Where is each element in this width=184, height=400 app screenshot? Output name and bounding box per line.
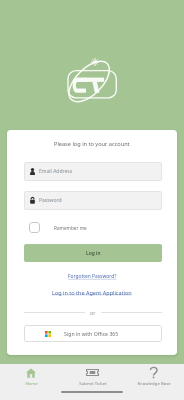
staticText: Please log in to your account: [54, 140, 130, 148]
other: Knowledge Base: [150, 367, 157, 378]
button[interactable]: Password: [30, 191, 162, 210]
button[interactable]: Remember me: [29, 221, 87, 234]
button[interactable]: Forgotten Password?: [68, 273, 117, 280]
button[interactable]: Email Address: [30, 162, 162, 181]
other: Logo: [60, 55, 124, 113]
staticText: Email Address: [39, 168, 73, 175]
staticText: Home: [25, 380, 38, 386]
staticText: or: [90, 309, 96, 316]
staticText: Sign in with Office 365: [64, 330, 119, 337]
button[interactable]: Log in: [24, 244, 162, 262]
staticText: Knowledge Base: [137, 380, 171, 386]
other: Submit Ticket: [86, 369, 99, 376]
staticText: Password: [39, 197, 62, 204]
staticText: Log in: [86, 250, 101, 257]
button[interactable]: Home: [0, 364, 62, 400]
button[interactable]: Submit Ticket: [62, 364, 123, 400]
button[interactable]: Knowledge Base: [123, 364, 184, 400]
staticText: Remember me: [54, 225, 87, 231]
other: Home: [26, 368, 36, 378]
staticText: Submit Ticket: [79, 380, 107, 386]
button[interactable]: Log in to the Agent Application: [52, 289, 132, 296]
button[interactable]: Sign in with Office 365: [24, 325, 162, 342]
